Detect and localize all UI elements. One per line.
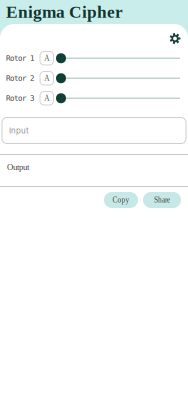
staticText: Rotor 3 — [6, 94, 34, 103]
staticText: Share — [154, 196, 170, 204]
staticText: A — [44, 94, 49, 102]
staticText: A — [44, 74, 49, 82]
staticText: Output — [7, 162, 29, 172]
button[interactable]: Rotor 1 letter — [40, 51, 53, 65]
button[interactable]: Rotor 3 letter — [40, 91, 53, 105]
staticText: Rotor 2 — [6, 74, 34, 83]
button[interactable]: Rotor 2 letter — [40, 71, 53, 85]
button[interactable]: Settings — [166, 29, 184, 47]
staticText: A — [44, 54, 49, 62]
staticText: Copy — [112, 196, 129, 204]
staticText: Rotor 1 — [6, 54, 34, 63]
staticText: Enigma Cipher — [6, 2, 123, 22]
button[interactable]: Share — [143, 192, 181, 208]
staticText: Input — [9, 126, 29, 135]
button[interactable]: Copy — [104, 192, 138, 208]
